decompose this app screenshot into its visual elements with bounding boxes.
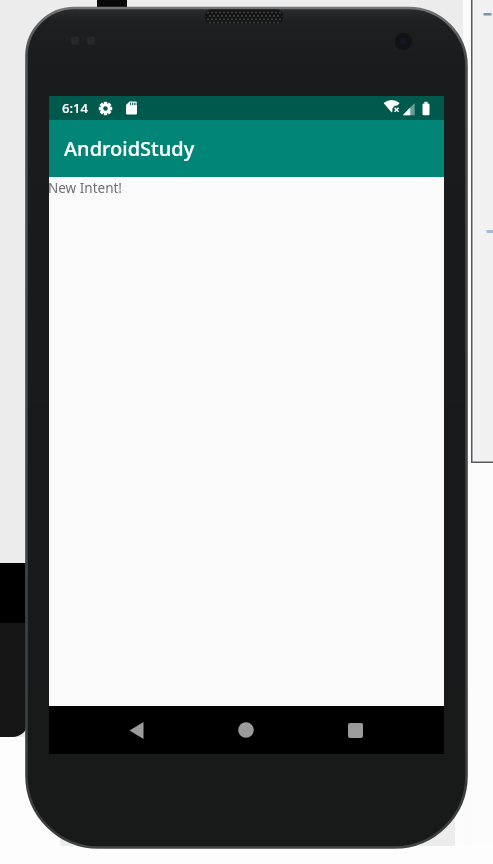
- button[interactable]: [223, 706, 269, 754]
- staticText: AndroidStudy: [64, 135, 195, 162]
- staticText: New Intent!: [48, 179, 122, 197]
- staticText: 6:14: [62, 99, 88, 117]
- button[interactable]: [332, 706, 378, 754]
- button[interactable]: [113, 706, 159, 754]
